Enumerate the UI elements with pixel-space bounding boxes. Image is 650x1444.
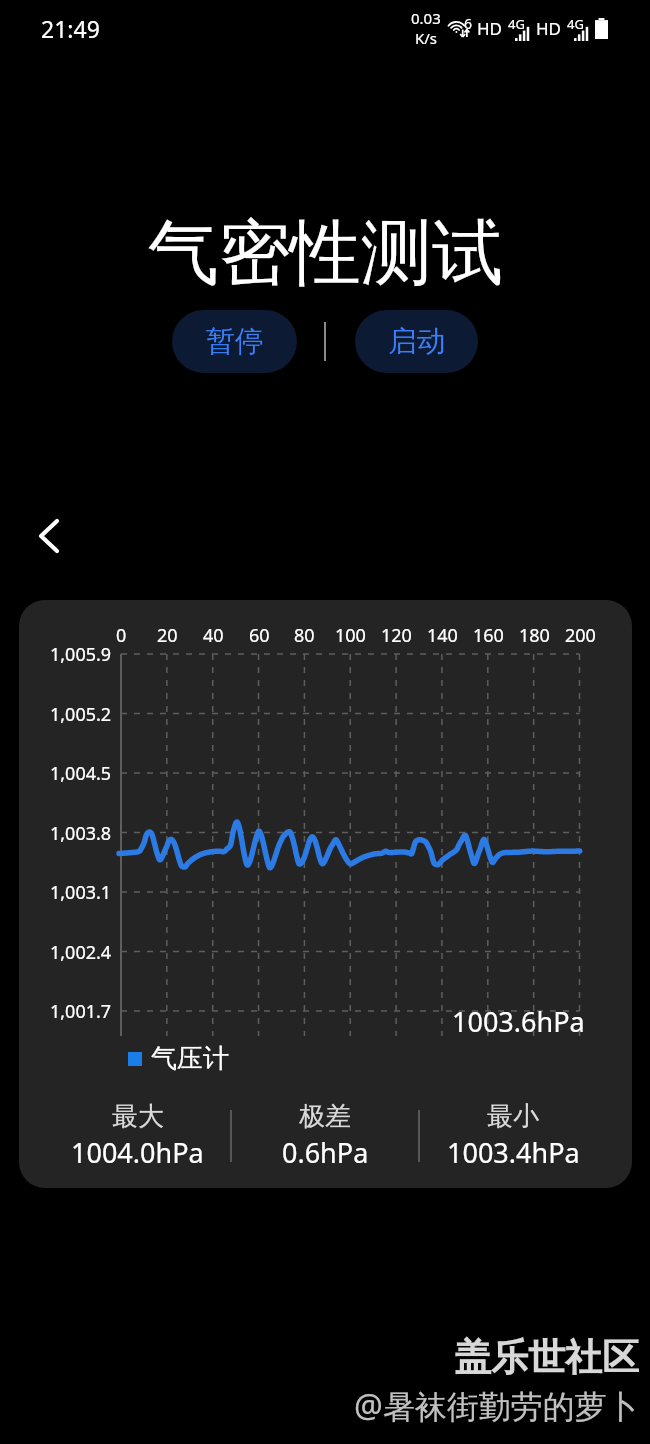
- staticText: 4G: [567, 15, 584, 33]
- staticText: 140: [427, 623, 458, 648]
- staticText: HD: [536, 17, 562, 40]
- staticText: @暑袜街勤劳的萝卜: [354, 1384, 639, 1428]
- staticText: 180: [519, 623, 550, 648]
- staticText: 最大: [112, 1100, 164, 1133]
- staticText: 1,003.8: [50, 821, 112, 846]
- button[interactable]: 暂停: [172, 310, 297, 373]
- staticText: 0.6hPa: [282, 1134, 369, 1171]
- staticText: 0: [116, 623, 127, 648]
- staticText: 气压计: [151, 1042, 229, 1075]
- staticText: 0.03: [411, 8, 441, 28]
- staticText: 6: [464, 14, 473, 33]
- staticText: 21:49: [41, 13, 100, 44]
- staticText: 1003.6hPa: [452, 1003, 585, 1040]
- button[interactable]: Back: [25, 512, 73, 560]
- staticText: 120: [381, 623, 412, 648]
- staticText: 100: [335, 623, 366, 648]
- staticText: 盖乐世社区: [454, 1334, 639, 1381]
- staticText: 1,005.9: [50, 642, 112, 667]
- staticText: 启动: [388, 323, 446, 360]
- staticText: 1003.4hPa: [447, 1134, 580, 1171]
- staticText: 1,002.4: [50, 940, 112, 965]
- staticText: 1,004.5: [50, 761, 112, 786]
- staticText: K/s: [415, 28, 438, 48]
- staticText: 1,005.2: [50, 702, 112, 727]
- staticText: HD: [477, 17, 503, 40]
- staticText: 20: [157, 623, 178, 648]
- button[interactable]: 启动: [355, 310, 478, 373]
- staticText: 40: [203, 623, 224, 648]
- staticText: 4G: [508, 15, 525, 33]
- staticText: 60: [249, 623, 270, 648]
- staticText: 极差: [299, 1100, 351, 1133]
- staticText: 气密性测试: [148, 209, 503, 298]
- staticText: 最小: [487, 1100, 539, 1133]
- staticText: 160: [473, 623, 504, 648]
- staticText: 200: [565, 623, 596, 648]
- staticText: 1,003.1: [50, 880, 112, 905]
- staticText: 暂停: [206, 323, 264, 360]
- staticText: 1004.0hPa: [71, 1134, 204, 1171]
- staticText: 1,001.7: [50, 999, 112, 1024]
- staticText: 80: [294, 623, 315, 648]
